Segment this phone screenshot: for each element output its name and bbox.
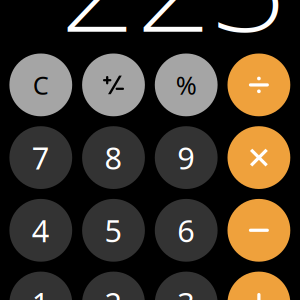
staticText: 9 xyxy=(177,137,195,178)
button[interactable]: 5 xyxy=(82,199,145,262)
staticText: 5 xyxy=(104,210,122,251)
staticText: 1 xyxy=(32,283,50,300)
button[interactable]: 6 xyxy=(155,199,218,262)
button[interactable]: Plus xyxy=(227,272,290,300)
button[interactable]: Minus xyxy=(227,199,290,262)
staticText: C xyxy=(33,68,49,102)
button[interactable]: % xyxy=(155,53,218,116)
staticText: 8 xyxy=(104,137,122,178)
staticText: 7 xyxy=(32,137,50,178)
staticText: 4 xyxy=(32,210,50,251)
button[interactable]: 4 xyxy=(9,199,72,262)
staticText: 223 xyxy=(60,0,288,69)
button[interactable]: 7 xyxy=(9,126,72,189)
button[interactable]: 2 xyxy=(82,272,145,300)
button[interactable]: 9 xyxy=(155,126,218,189)
staticText: 3 xyxy=(177,283,195,300)
staticText: 2 xyxy=(104,283,122,300)
button[interactable]: 3 xyxy=(155,272,218,300)
staticText: % xyxy=(176,68,197,102)
button[interactable]: Divide xyxy=(227,53,290,116)
button[interactable]: 1 xyxy=(9,272,72,300)
staticText: 6 xyxy=(177,210,195,251)
button[interactable]: Plus minus xyxy=(82,53,145,116)
button[interactable]: Multiply xyxy=(227,126,290,189)
button[interactable]: 8 xyxy=(82,126,145,189)
button[interactable]: C xyxy=(9,53,72,116)
